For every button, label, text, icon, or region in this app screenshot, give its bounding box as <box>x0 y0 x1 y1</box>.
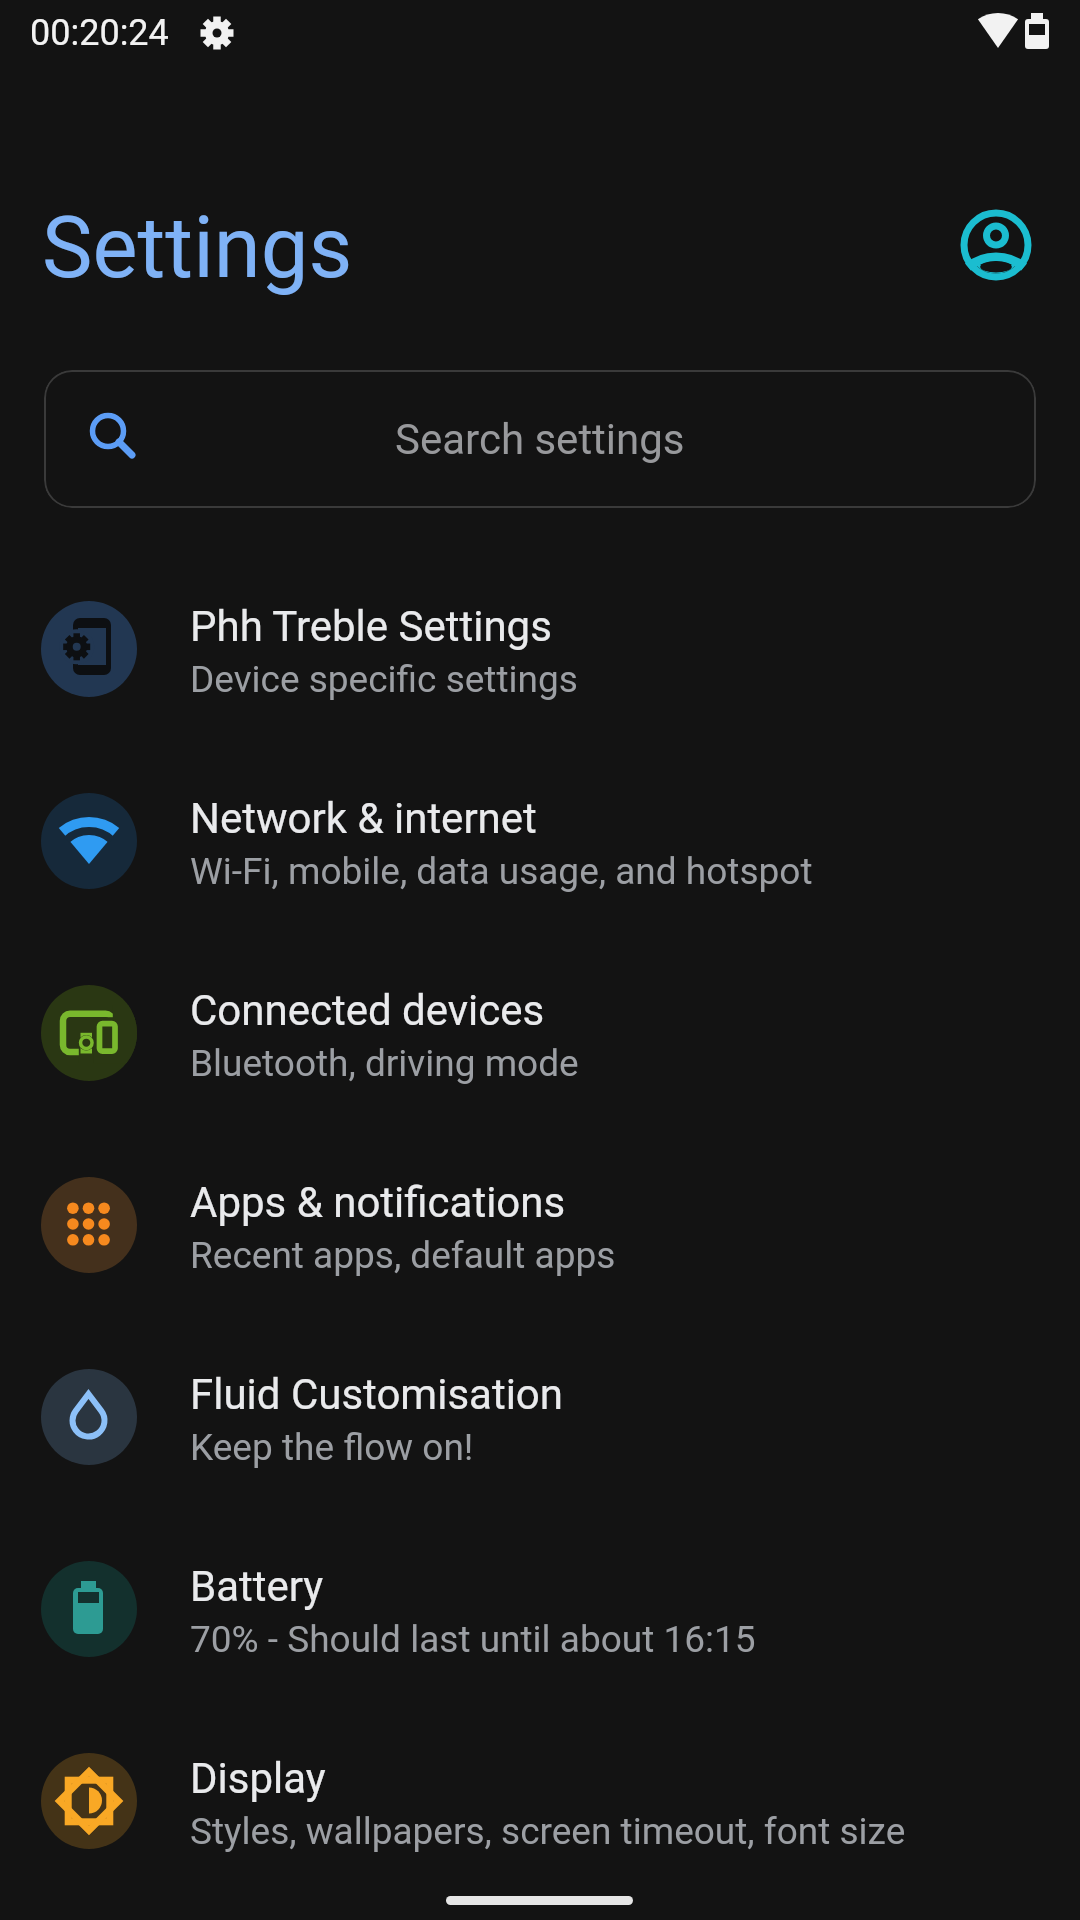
staticText: Settings <box>42 198 353 298</box>
staticText: Bluetooth, driving mode <box>190 1042 579 1085</box>
staticText: Connected devices <box>190 986 545 1035</box>
button[interactable]: Network & internet <box>0 745 1080 937</box>
button[interactable]: Connected devices <box>0 937 1080 1129</box>
button[interactable]: Fluid Customisation <box>0 1321 1080 1513</box>
button[interactable]: Battery <box>0 1513 1080 1705</box>
staticText: Battery <box>190 1562 324 1611</box>
staticText: Display <box>190 1754 326 1803</box>
staticText: Phh Treble Settings <box>190 602 552 651</box>
staticText: Fluid Customisation <box>190 1370 564 1419</box>
staticText: 00:20:24 <box>30 12 169 54</box>
staticText: Styles, wallpapers, screen timeout, font… <box>190 1810 906 1853</box>
staticText: Apps & notifications <box>190 1178 566 1227</box>
staticText: Keep the flow on! <box>190 1426 474 1469</box>
staticText: Device specific settings <box>190 658 578 701</box>
button[interactable]: Search settings <box>44 370 1036 508</box>
staticText: Search settings <box>395 415 685 464</box>
button[interactable] <box>958 208 1034 284</box>
staticText: Wi-Fi, mobile, data usage, and hotspot <box>190 850 813 893</box>
staticText: Network & internet <box>190 794 537 843</box>
staticText: Recent apps, default apps <box>190 1234 616 1277</box>
button[interactable]: Phh Treble Settings <box>0 553 1080 745</box>
button[interactable]: Apps & notifications <box>0 1129 1080 1321</box>
staticText: 70% - Should last until about 16:15 <box>190 1618 756 1661</box>
button[interactable]: Display <box>0 1705 1080 1897</box>
